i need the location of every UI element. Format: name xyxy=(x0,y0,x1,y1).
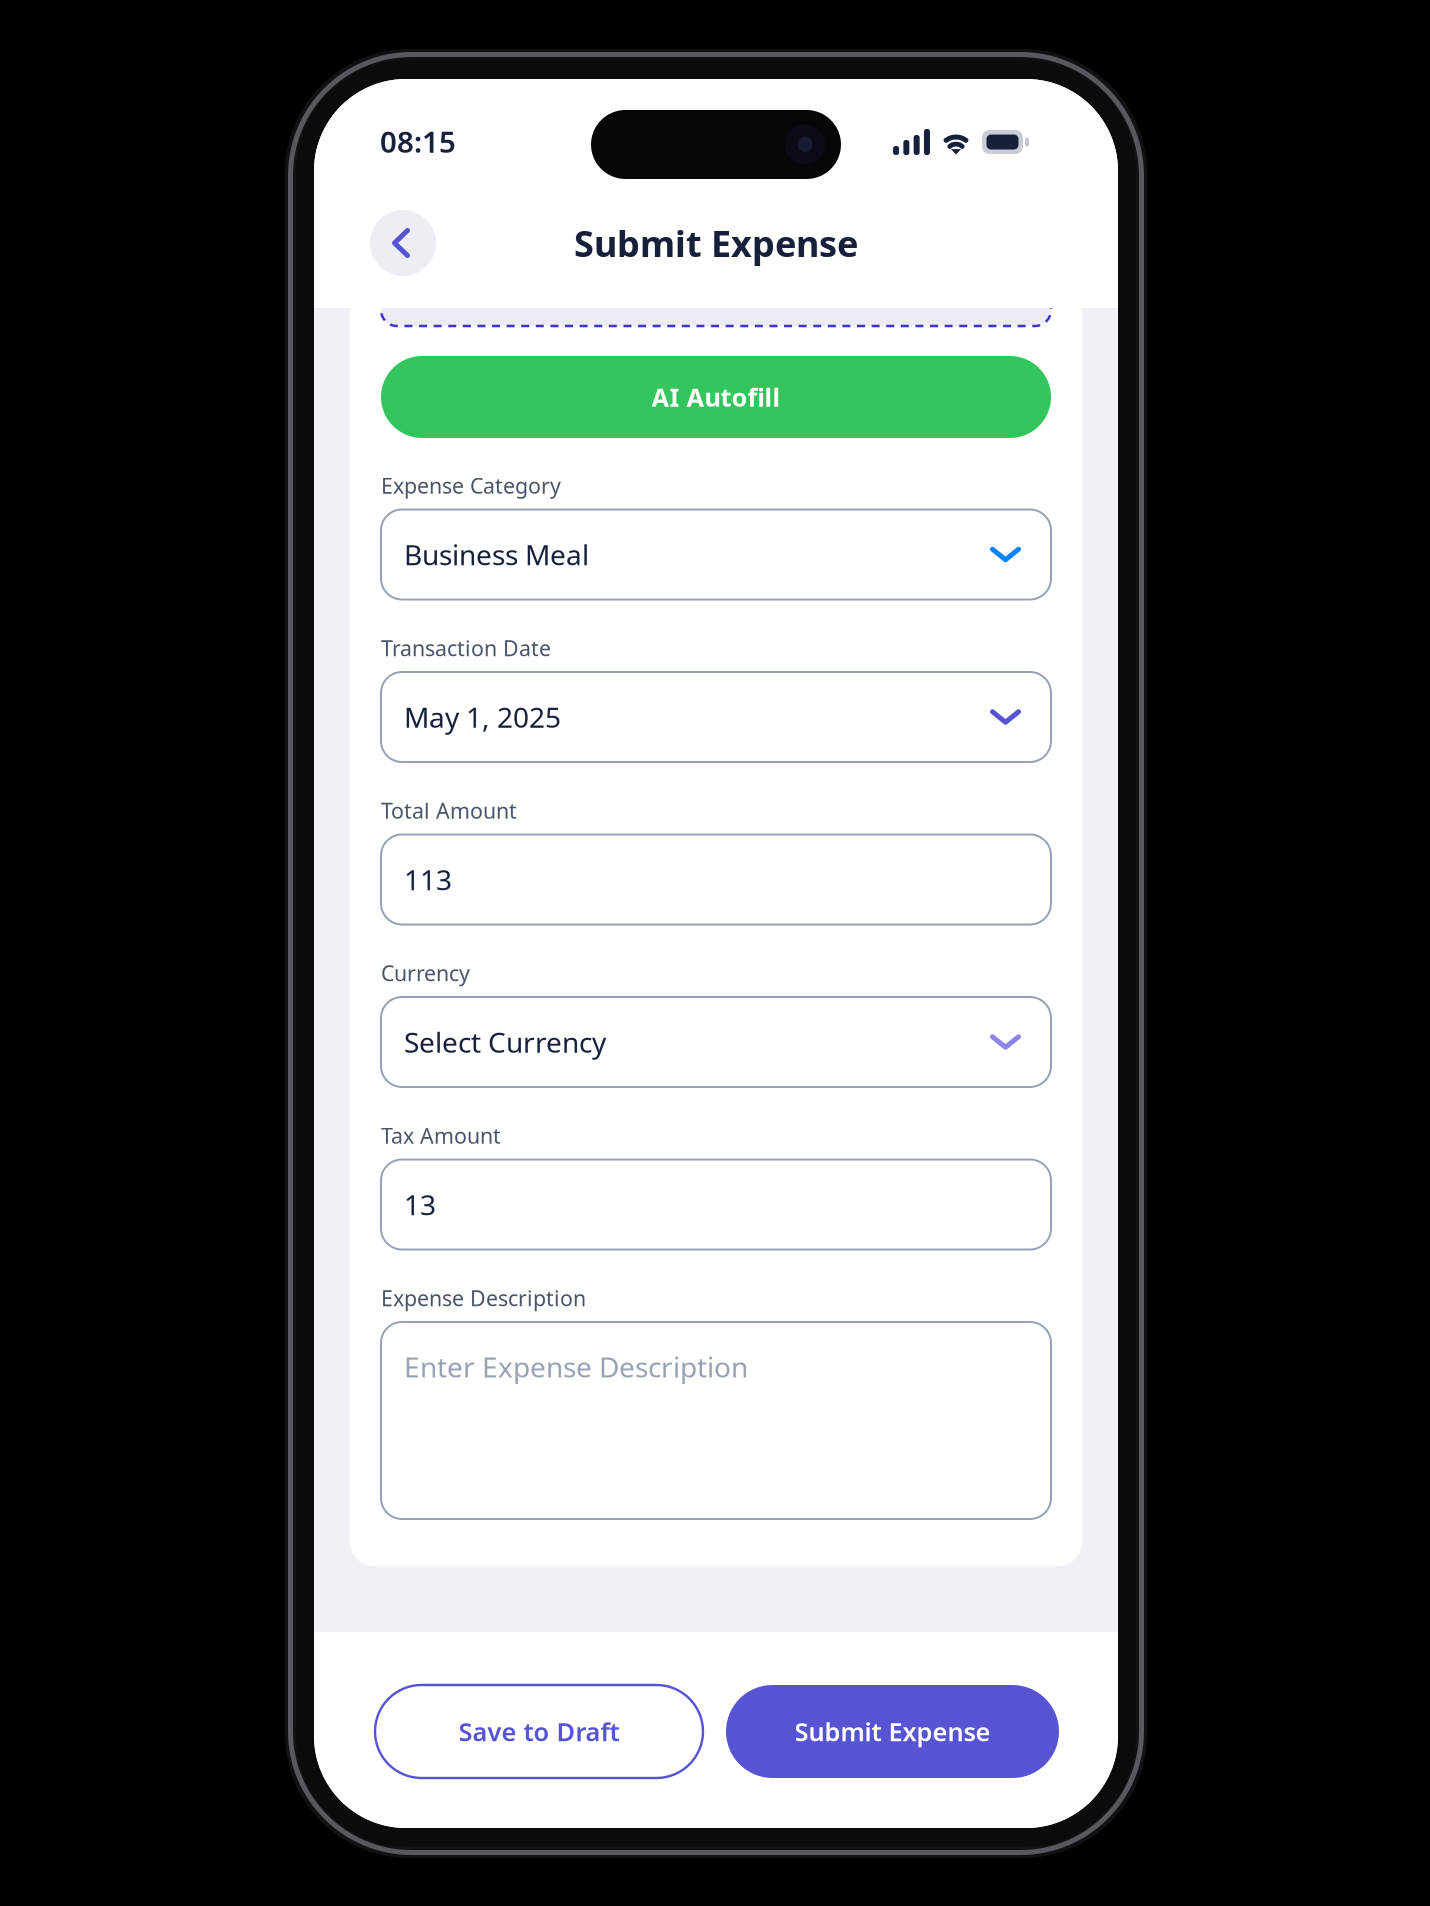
staticText: Expense Description xyxy=(381,1284,586,1312)
staticText: Save to Draft xyxy=(458,1715,619,1748)
staticText: Transaction Date xyxy=(381,634,551,662)
staticText: May 1, 2025 xyxy=(404,698,561,736)
button[interactable]: AI Autofill xyxy=(381,356,1051,438)
staticText: Select Currency xyxy=(404,1023,606,1061)
staticText: 08:15 xyxy=(380,122,456,161)
button[interactable]: Back xyxy=(370,210,436,276)
button[interactable]: Save to Draft xyxy=(375,1685,703,1778)
staticText: 113 xyxy=(404,861,452,898)
staticText: 13 xyxy=(404,1186,436,1223)
button[interactable]: May 1, 2025 xyxy=(381,672,1051,762)
staticText: Total Amount xyxy=(381,796,517,825)
button[interactable]: 13 xyxy=(381,1159,1051,1249)
button[interactable]: Business Meal xyxy=(381,509,1051,599)
button[interactable]: Select Currency xyxy=(381,997,1051,1087)
staticText: Tax Amount xyxy=(381,1121,501,1150)
staticText: Submit Expense xyxy=(794,1715,990,1748)
staticText: Currency xyxy=(381,959,470,987)
button[interactable]: Submit Expense xyxy=(726,1685,1059,1778)
staticText: Submit Expense xyxy=(574,219,858,267)
button[interactable]: 113 xyxy=(381,834,1051,924)
staticText: Business Meal xyxy=(404,536,589,573)
button[interactable]: Enter Expense Description xyxy=(381,1322,1051,1519)
staticText: AI Autofill xyxy=(651,380,780,414)
staticText: Expense Category xyxy=(381,471,561,500)
staticText: Enter Expense Description xyxy=(404,1348,748,1385)
